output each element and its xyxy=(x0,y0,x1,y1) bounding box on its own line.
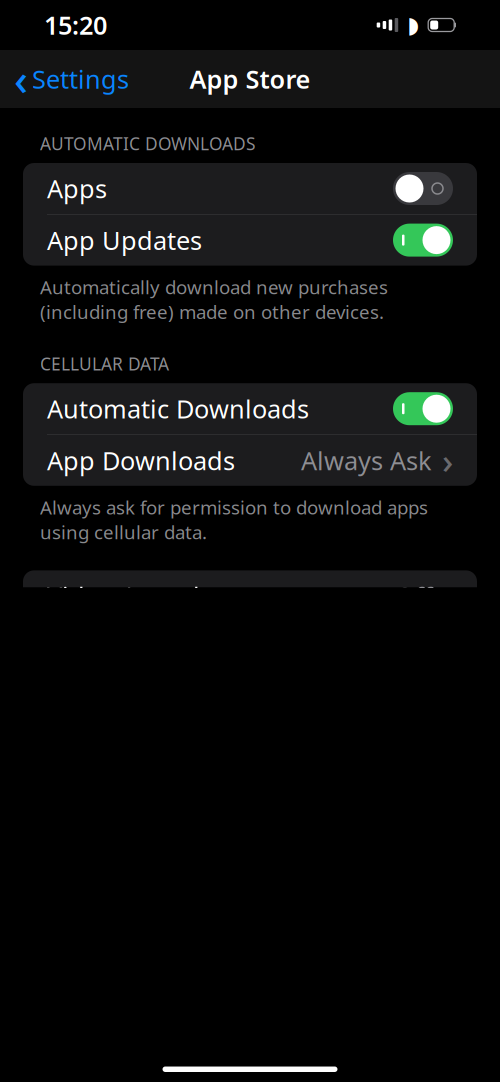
staticText: Always ask for permission to download ap… xyxy=(40,495,428,544)
staticText: App Downloads xyxy=(47,443,235,477)
staticText: ‹ xyxy=(14,51,28,107)
staticText: Apps xyxy=(47,172,107,205)
staticText: App Store xyxy=(189,62,310,96)
staticText: Video Autoplay xyxy=(47,579,227,613)
staticText: Automatic Downloads xyxy=(47,392,309,425)
staticText: ◗ xyxy=(407,12,419,38)
staticText: Always Ask xyxy=(301,443,432,477)
staticText: › xyxy=(442,573,453,619)
button[interactable]: ‹ xyxy=(0,57,143,101)
button[interactable]: Video Autoplay xyxy=(23,570,477,621)
staticText: App Updates xyxy=(47,223,202,257)
staticText: CELLULAR DATA xyxy=(40,352,169,375)
staticText: › xyxy=(442,437,453,483)
staticText: Automatically download new purchases (in… xyxy=(40,275,388,324)
button[interactable]: Apps xyxy=(23,163,477,214)
button[interactable]: App Downloads xyxy=(23,435,477,486)
button[interactable]: App Updates xyxy=(23,215,477,266)
staticText: Settings xyxy=(32,62,129,96)
button[interactable]: Automatic Downloads xyxy=(23,383,477,434)
staticText: AUTOMATIC DOWNLOADS xyxy=(40,132,256,155)
staticText: 15:20 xyxy=(44,8,107,42)
staticText: Off xyxy=(395,579,432,613)
